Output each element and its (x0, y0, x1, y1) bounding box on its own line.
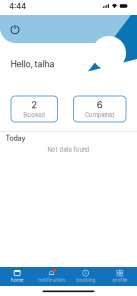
button[interactable]: 2 (11, 96, 57, 122)
button[interactable]: booking (68, 267, 103, 286)
staticText: profile (112, 277, 127, 283)
staticText: Hello, talha (10, 59, 54, 69)
staticText: notification (38, 277, 65, 283)
button[interactable]: 6 (73, 96, 126, 122)
staticText: 6 (97, 99, 103, 110)
button[interactable]: notification (34, 267, 68, 286)
staticText: booking (76, 277, 95, 283)
button[interactable]: profile (103, 267, 137, 286)
staticText: Completed (85, 111, 115, 119)
staticText: 2 (31, 99, 37, 110)
staticText: Booked (23, 111, 45, 119)
staticText: Not data found (47, 146, 89, 153)
staticText: Today (5, 134, 25, 142)
button[interactable]: home (0, 267, 34, 286)
staticText: 4:44 (9, 1, 26, 11)
button[interactable]: Log out (7, 22, 22, 37)
staticText: home (11, 277, 24, 283)
